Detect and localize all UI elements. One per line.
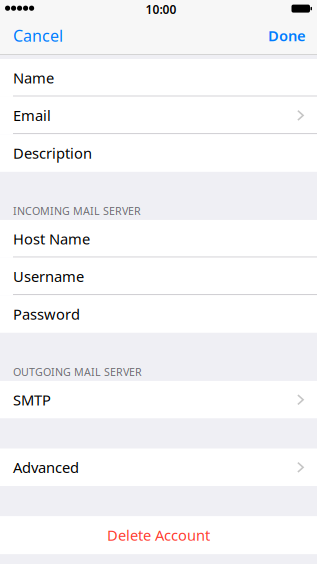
button[interactable]: Username [0,258,317,295]
button[interactable]: Host Name [0,220,317,258]
staticText: Name [13,68,54,88]
staticText: Username [13,267,84,286]
staticText: INCOMING MAIL SERVER [13,204,141,218]
button[interactable]: SMTP [0,381,317,418]
staticText: Advanced [13,458,79,477]
staticText: Email [13,106,51,125]
button[interactable]: Done [258,20,317,55]
button[interactable]: Email [0,97,317,134]
button[interactable]: Password [0,295,317,333]
staticText: Password [13,304,80,324]
staticText: Delete Account [107,525,210,545]
button[interactable]: Cancel [0,20,73,55]
button[interactable]: Name [0,59,317,97]
staticText: OUTGOING MAIL SERVER [13,365,142,379]
button[interactable]: Advanced [0,448,317,486]
button[interactable]: Description [0,134,317,172]
staticText: Description [13,143,92,163]
staticText: Cancel [13,25,63,46]
staticText: Host Name [13,229,90,248]
staticText: SMTP [13,390,51,409]
staticText: Done [268,26,306,45]
staticText: 10:00 [145,1,176,17]
button[interactable]: Delete Account [0,516,317,554]
